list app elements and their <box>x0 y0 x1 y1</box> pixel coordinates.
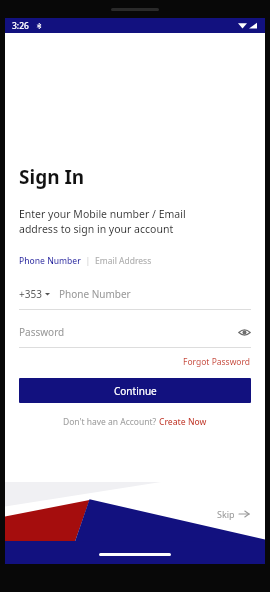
staticText: Sign In <box>19 164 85 190</box>
staticText: Phone Number <box>19 255 81 267</box>
staticText: Don't have an Account? <box>63 416 159 428</box>
staticText: Password <box>19 325 237 339</box>
staticText: +353 <box>19 287 42 301</box>
staticText: | <box>81 255 95 267</box>
button[interactable]: Password <box>19 322 251 348</box>
staticText: 3:26 <box>12 20 29 32</box>
staticText: Create Now <box>159 416 207 428</box>
button[interactable]: Continue <box>19 378 251 403</box>
staticText: Continue <box>114 384 157 398</box>
staticText: Phone Number <box>59 287 131 301</box>
staticText: Skip <box>217 508 235 520</box>
staticText: Forgot Password <box>183 356 251 368</box>
button[interactable]: Phone Number <box>19 255 81 267</box>
staticText: Enter your Mobile number / Email address… <box>19 207 186 236</box>
staticText: Email Address <box>95 255 152 267</box>
button[interactable]: +353 <box>19 284 251 310</box>
button[interactable]: Email Address <box>95 255 152 267</box>
button[interactable]: Create Now <box>159 416 207 428</box>
button[interactable]: Forgot Password <box>183 356 251 368</box>
button[interactable]: Show password <box>237 325 251 339</box>
button[interactable]: Skip <box>217 508 249 520</box>
